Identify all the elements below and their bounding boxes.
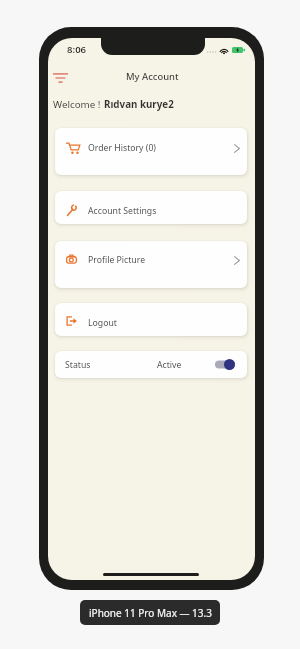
staticText: iPhone 11 Pro Max — 13.3: [89, 606, 212, 620]
button[interactable]: Order History (0): [55, 128, 247, 175]
staticText: Account Settings: [88, 205, 157, 217]
staticText: Logout: [88, 317, 117, 329]
staticText: Rıdvan kurye2: [104, 98, 174, 111]
staticText: Order History (0): [88, 142, 156, 154]
button[interactable]: Account Settings: [55, 191, 247, 224]
staticText: Status: [65, 359, 91, 371]
staticText: 8:06: [67, 43, 87, 56]
button[interactable]: Menu: [48, 65, 73, 91]
staticText: Profile Picture: [88, 254, 146, 266]
staticText: My Account: [126, 70, 179, 83]
button[interactable]: Profile Picture: [55, 241, 247, 288]
button[interactable]: Logout: [55, 303, 247, 336]
staticText: Welcome !: [53, 98, 104, 111]
button[interactable]: Status toggle: [211, 355, 238, 374]
staticText: Active: [157, 359, 182, 371]
